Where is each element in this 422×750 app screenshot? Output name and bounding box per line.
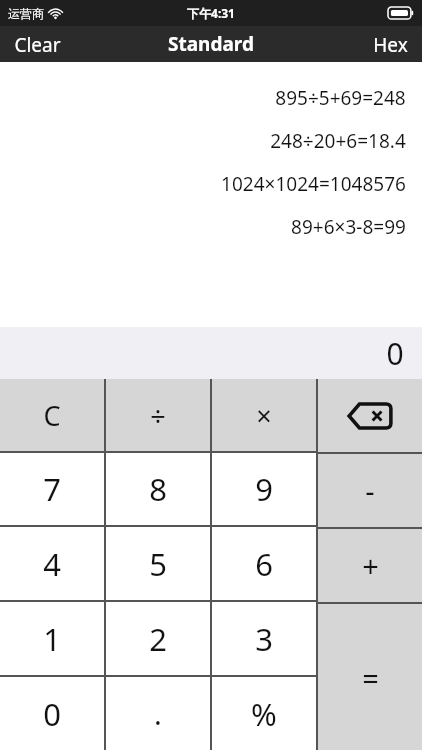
button[interactable]: = [318,604,422,750]
button[interactable]: 9 [212,453,316,525]
staticText: 9 [255,468,273,510]
staticText: 895÷5+69=248 [275,85,406,111]
staticText: 1024×1024=1048576 [221,171,406,197]
staticText: 6 [255,543,273,585]
button[interactable]: . [106,677,210,750]
button[interactable]: 0 [0,677,104,750]
button[interactable]: 1 [0,602,104,675]
staticText: 89+6×3-8=99 [291,214,406,240]
button[interactable]: × [212,379,316,451]
staticText: 8 [149,468,167,510]
staticText: Standard [168,31,254,57]
staticText: 0 [386,333,404,374]
button[interactable]: 2 [106,602,210,675]
staticText: + [362,546,379,585]
button[interactable]: C [0,379,104,451]
staticText: 7 [43,468,61,510]
button[interactable]: Hex [359,26,422,62]
button[interactable]: 5 [106,527,210,600]
button[interactable]: Clear [0,26,75,62]
staticText: × [256,397,272,434]
staticText: Hex [373,32,408,56]
staticText: 0 [43,693,61,735]
staticText: 5 [149,543,167,585]
staticText: . [154,694,162,733]
button[interactable]: - [318,454,422,527]
staticText: 2 [149,618,167,660]
staticText: - [365,471,375,510]
staticText: Clear [14,32,61,56]
staticText: 1 [43,618,61,660]
staticText: = [362,658,379,697]
button[interactable]: 8 [106,453,210,525]
staticText: 4 [43,543,61,585]
staticText: C [43,397,61,434]
button[interactable]: Backspace [318,379,422,452]
staticText: 248÷20+6=18.4 [270,128,406,154]
button[interactable]: ÷ [106,379,210,451]
staticText: % [251,693,277,735]
staticText: 3 [255,618,273,660]
button[interactable]: 7 [0,453,104,525]
button[interactable]: 6 [212,527,316,600]
staticText: 下午4:31 [187,5,235,21]
staticText: ÷ [150,397,166,434]
button[interactable]: 4 [0,527,104,600]
button[interactable]: + [318,529,422,602]
button[interactable]: % [212,677,316,750]
button[interactable]: 3 [212,602,316,675]
staticText: 运营商 [8,6,44,21]
